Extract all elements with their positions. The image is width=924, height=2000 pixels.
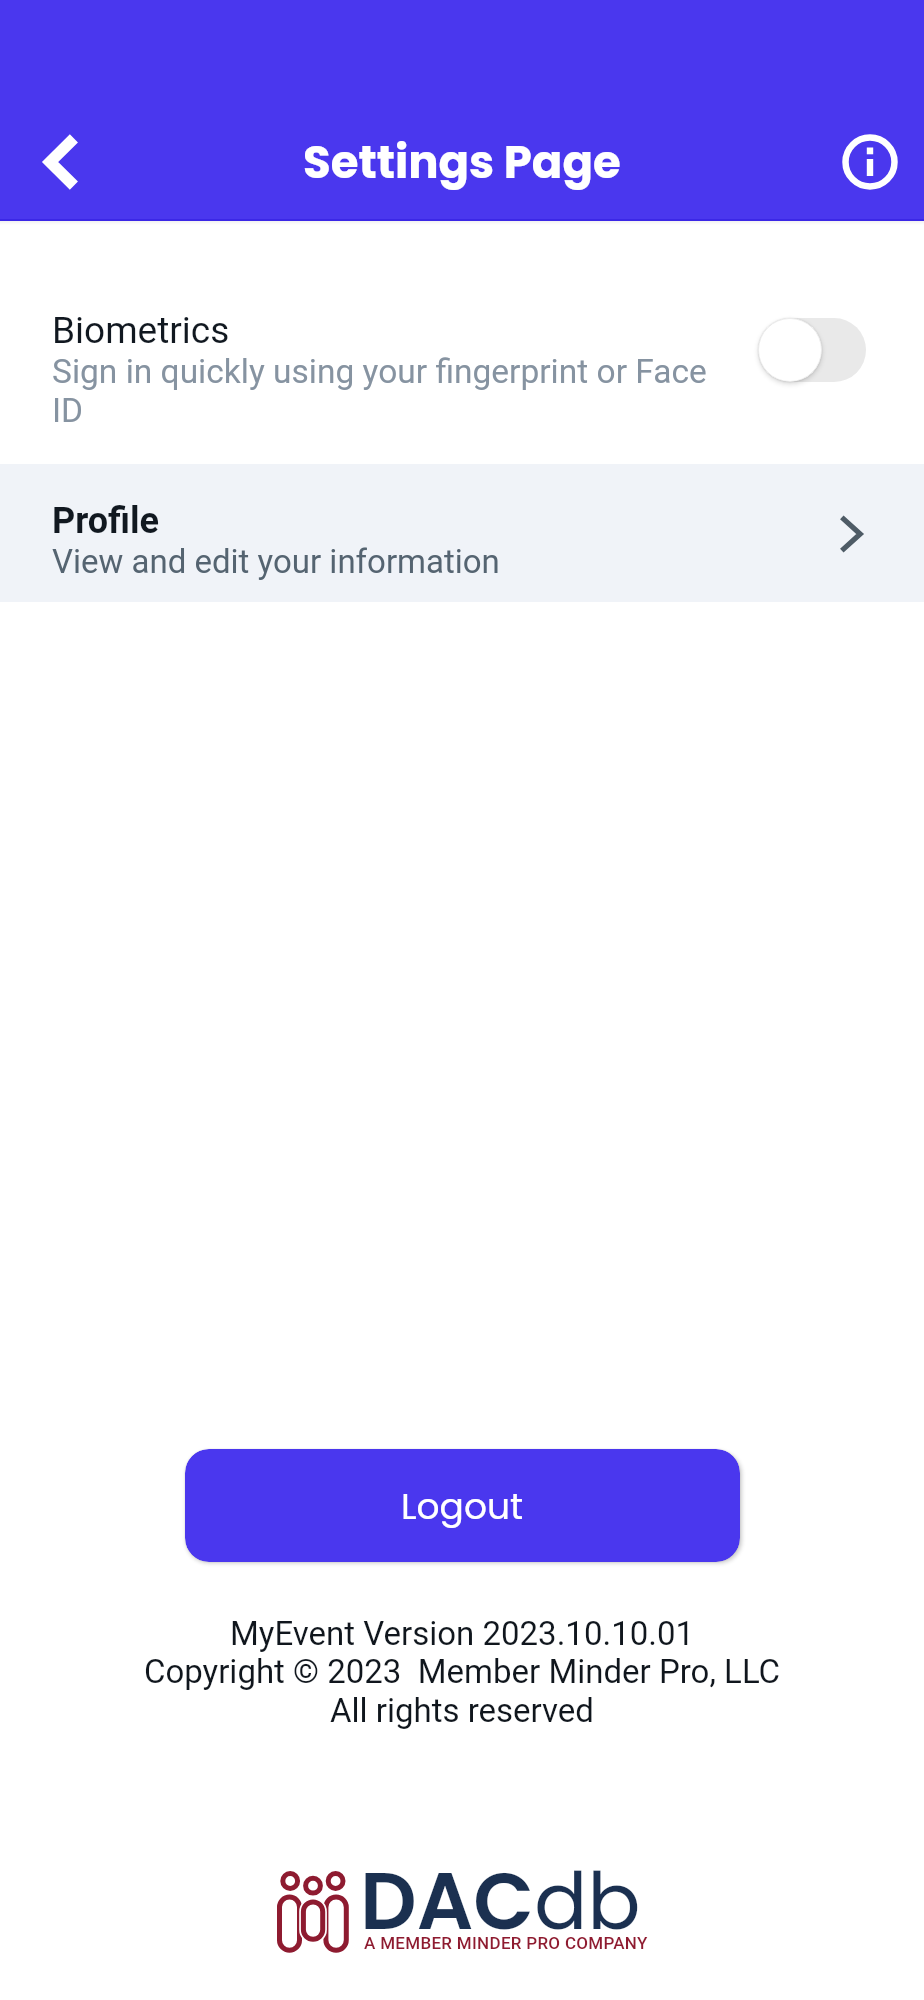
button[interactable]: Biometrics toggle [758, 318, 866, 382]
button[interactable]: Info [832, 124, 908, 200]
staticText: Logout [401, 1481, 524, 1531]
staticText: View and edit your information [52, 542, 500, 581]
staticText: A MEMBER MINDER PRO COMPANY [364, 1933, 648, 1953]
button[interactable]: Back [22, 122, 102, 202]
staticText: Settings Page [303, 131, 621, 194]
button[interactable]: Profile [0, 464, 924, 602]
button[interactable]: Biometrics [0, 221, 924, 464]
staticText: MyEvent Version 2023.10.10.01 Copyright … [0, 1614, 924, 1731]
button[interactable]: Logout [185, 1449, 740, 1562]
staticText: Sign in quickly using your fingerprint o… [52, 352, 732, 430]
staticText: Biometrics [52, 309, 230, 352]
staticText: DACdb [360, 1846, 641, 1957]
staticText: Profile [52, 500, 160, 542]
